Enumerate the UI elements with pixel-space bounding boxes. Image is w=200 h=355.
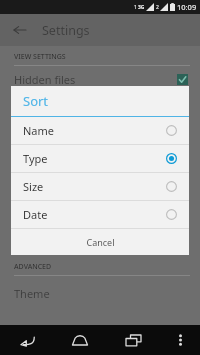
- staticText: Sort: [23, 92, 49, 110]
- button[interactable]: Hidden files: [0, 66, 200, 92]
- staticText: 2: [156, 4, 159, 11]
- staticText: 10:09: [177, 2, 197, 12]
- button[interactable]: Name: [11, 117, 189, 144]
- staticText: Date: [23, 207, 48, 222]
- staticText: 1: [134, 4, 137, 11]
- button[interactable]: Cancel: [11, 229, 189, 255]
- staticText: Cancel: [86, 236, 115, 248]
- button[interactable]: Date: [11, 201, 189, 228]
- staticText: Size: [23, 179, 44, 194]
- button[interactable]: Home: [64, 325, 96, 355]
- staticText: ADVANCED: [14, 262, 52, 272]
- staticText: VIEW SETTINGS: [14, 52, 66, 62]
- button[interactable]: Back: [11, 325, 43, 355]
- staticText: Theme: [14, 286, 50, 301]
- staticText: 3G: [138, 4, 145, 11]
- staticText: Name: [23, 123, 55, 138]
- button[interactable]: Back: [10, 20, 30, 40]
- button[interactable]: Size: [11, 173, 189, 200]
- button[interactable]: Type: [11, 145, 189, 172]
- staticText: Hidden files: [14, 72, 76, 87]
- button[interactable]: Theme: [0, 280, 200, 306]
- button[interactable]: More options: [170, 330, 190, 350]
- staticText: Type: [23, 151, 48, 166]
- button[interactable]: Recent apps: [117, 325, 149, 355]
- staticText: Settings: [42, 22, 90, 39]
